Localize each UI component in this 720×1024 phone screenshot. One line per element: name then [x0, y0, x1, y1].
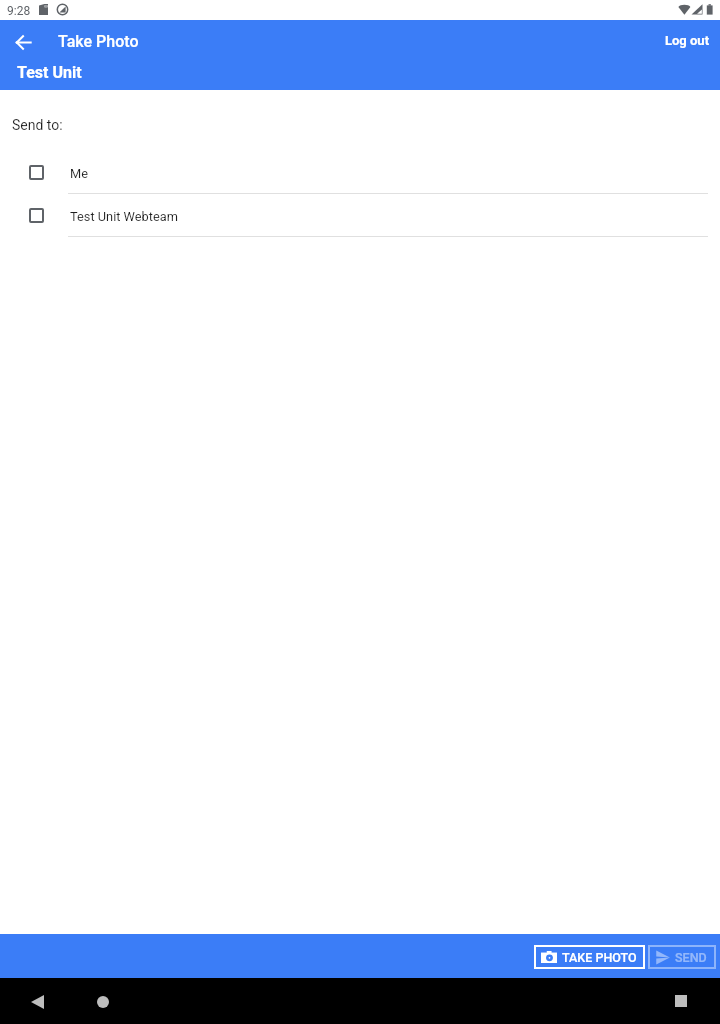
button[interactable]: Test Unit Webteam	[0, 194, 720, 237]
button[interactable]: Recent apps	[661, 981, 701, 1021]
staticText: Me	[70, 166, 88, 181]
staticText: Test Unit Webteam	[70, 209, 178, 224]
staticText: Test Unit	[17, 63, 82, 82]
staticText: Log out	[665, 33, 710, 48]
staticText: TAKE PHOTO	[562, 950, 637, 965]
button[interactable]: Me	[0, 151, 720, 194]
button[interactable]: Home	[83, 982, 123, 1022]
staticText: Send to:	[12, 117, 63, 133]
button[interactable]: Back	[3, 22, 43, 62]
button[interactable]: TAKE PHOTO	[534, 945, 645, 969]
staticText: Take Photo	[58, 32, 139, 51]
staticText: 9:28	[7, 4, 31, 18]
button[interactable]: Back	[17, 982, 57, 1022]
button[interactable]: Log out	[654, 25, 720, 56]
button[interactable]: SEND	[648, 945, 716, 969]
staticText: SEND	[675, 950, 707, 965]
